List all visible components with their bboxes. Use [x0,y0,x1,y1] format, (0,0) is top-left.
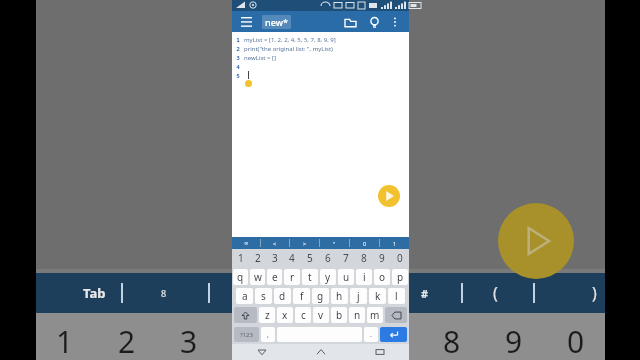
staticText: 2 [236,45,240,53]
button[interactable]: l [388,288,405,304]
staticText: e [272,270,278,284]
button[interactable]: 6 [320,249,336,267]
button[interactable]: Hints [365,13,383,31]
staticText: i [363,270,366,284]
staticText: p [397,270,404,284]
staticText: " [333,240,336,247]
button[interactable]: Recents [350,344,409,360]
button[interactable]: , [261,327,275,342]
button[interactable]: Enter [380,327,407,342]
button[interactable]: Backspace [385,307,407,323]
button[interactable]: m [367,307,383,323]
button[interactable]: o [374,269,390,285]
staticText: 4 [289,251,295,265]
button[interactable]: u [338,269,354,285]
staticText: 9 [379,251,385,265]
staticText: 3 [236,54,240,62]
button[interactable]: j [350,288,367,304]
staticText: h [336,289,343,303]
staticText: 8 [443,321,461,360]
staticText: 8 [361,251,367,265]
button[interactable]: 1 [233,249,248,267]
button[interactable]: s [255,288,272,304]
button[interactable]: y [320,269,336,285]
button[interactable]: ?123 [234,327,259,342]
staticText: ) [592,282,597,304]
button[interactable]: a [236,288,253,304]
button[interactable]: 0 [392,249,408,267]
button[interactable]: f [293,288,310,304]
button[interactable]: 0 [350,237,379,249]
staticText: k [375,289,381,303]
button[interactable]: b [331,307,347,323]
button[interactable]: x [277,307,293,323]
staticText: # [421,286,429,301]
button[interactable]: Menu [238,14,254,30]
staticText: 1 [56,321,74,360]
button[interactable]: Run [498,203,574,279]
staticText: 1 [393,240,397,247]
button[interactable]: g [312,288,329,304]
staticText: x [282,308,288,322]
button[interactable]: i [356,269,372,285]
staticText: y [325,270,331,284]
staticText: 0 [397,251,403,265]
button[interactable]: ∞ [232,237,260,249]
staticText: 3 [180,321,198,360]
staticText: m [370,308,380,322]
staticText: 1 [238,251,244,265]
button[interactable]: h [331,288,348,304]
staticText: . [370,330,372,340]
button[interactable]: 4 [284,249,300,267]
staticText: 2 [255,251,261,265]
staticText: < [273,240,277,247]
staticText: new* [265,16,288,28]
button[interactable]: Back [232,344,291,360]
button[interactable]: k [369,288,386,304]
staticText: v [318,308,324,322]
button[interactable]: z [259,307,275,323]
button[interactable]: " [320,237,349,249]
button[interactable]: 5 [302,249,318,267]
staticText: w [254,270,262,284]
button[interactable]: More options [387,14,403,30]
staticText: t [308,270,312,284]
staticText: print("the original list: ", myList) [244,45,333,53]
button[interactable]: q [233,269,248,285]
staticText: d [279,289,286,303]
button[interactable]: t [302,269,318,285]
staticText: 4 [236,63,240,71]
staticText: Tab [83,284,106,302]
button[interactable]: 8 [356,249,372,267]
staticText: ?123 [240,331,253,339]
button[interactable]: 3 [267,249,282,267]
staticText: g [317,289,324,303]
button[interactable]: . [364,327,378,342]
button[interactable]: e [267,269,282,285]
button[interactable]: w [250,269,265,285]
button[interactable]: 7 [338,249,354,267]
staticText: ( [493,282,498,304]
button[interactable]: Shift [234,307,257,323]
button[interactable]: Home [291,344,350,360]
button[interactable]: < [261,237,289,249]
staticText: 1 [236,36,240,44]
button[interactable]: 9 [374,249,390,267]
button[interactable]: d [274,288,291,304]
staticText: ∞ [244,240,249,246]
button[interactable]: v [313,307,329,323]
button[interactable]: new* [262,15,291,29]
button[interactable]: n [349,307,365,323]
button[interactable]: > [290,237,319,249]
staticText: o [379,270,386,284]
button[interactable]: Run [378,185,400,207]
button[interactable]: 2 [250,249,265,267]
button[interactable]: c [295,307,311,323]
button[interactable]: p [392,269,408,285]
button[interactable]: Open file [341,13,359,31]
staticText: f [300,289,304,303]
button[interactable]: r [284,269,300,285]
staticText: n [354,308,361,322]
button[interactable]: 1 [380,237,409,249]
